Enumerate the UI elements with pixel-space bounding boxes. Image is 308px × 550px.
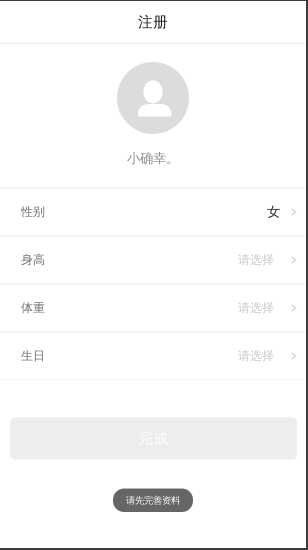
button[interactable]: 性别 — [0, 188, 306, 236]
staticText: 身高 — [21, 252, 45, 267]
button[interactable]: 小确幸。 — [0, 44, 306, 187]
button[interactable]: 身高 — [0, 236, 306, 284]
staticText: 小确幸。 — [127, 150, 179, 166]
staticText: 注册 — [138, 13, 168, 31]
staticText: 性别 — [21, 204, 45, 219]
staticText: 体重 — [21, 300, 45, 315]
staticText: 请先完善资料 — [126, 494, 180, 506]
button[interactable]: 体重 — [0, 284, 306, 332]
staticText: 请选择 — [238, 252, 274, 267]
staticText: 请选择 — [238, 300, 274, 315]
button[interactable]: 生日 — [0, 332, 306, 380]
staticText: 女 — [267, 204, 280, 220]
staticText: 完成 — [138, 429, 168, 447]
staticText: 请选择 — [238, 348, 274, 363]
staticText: 生日 — [21, 348, 45, 363]
